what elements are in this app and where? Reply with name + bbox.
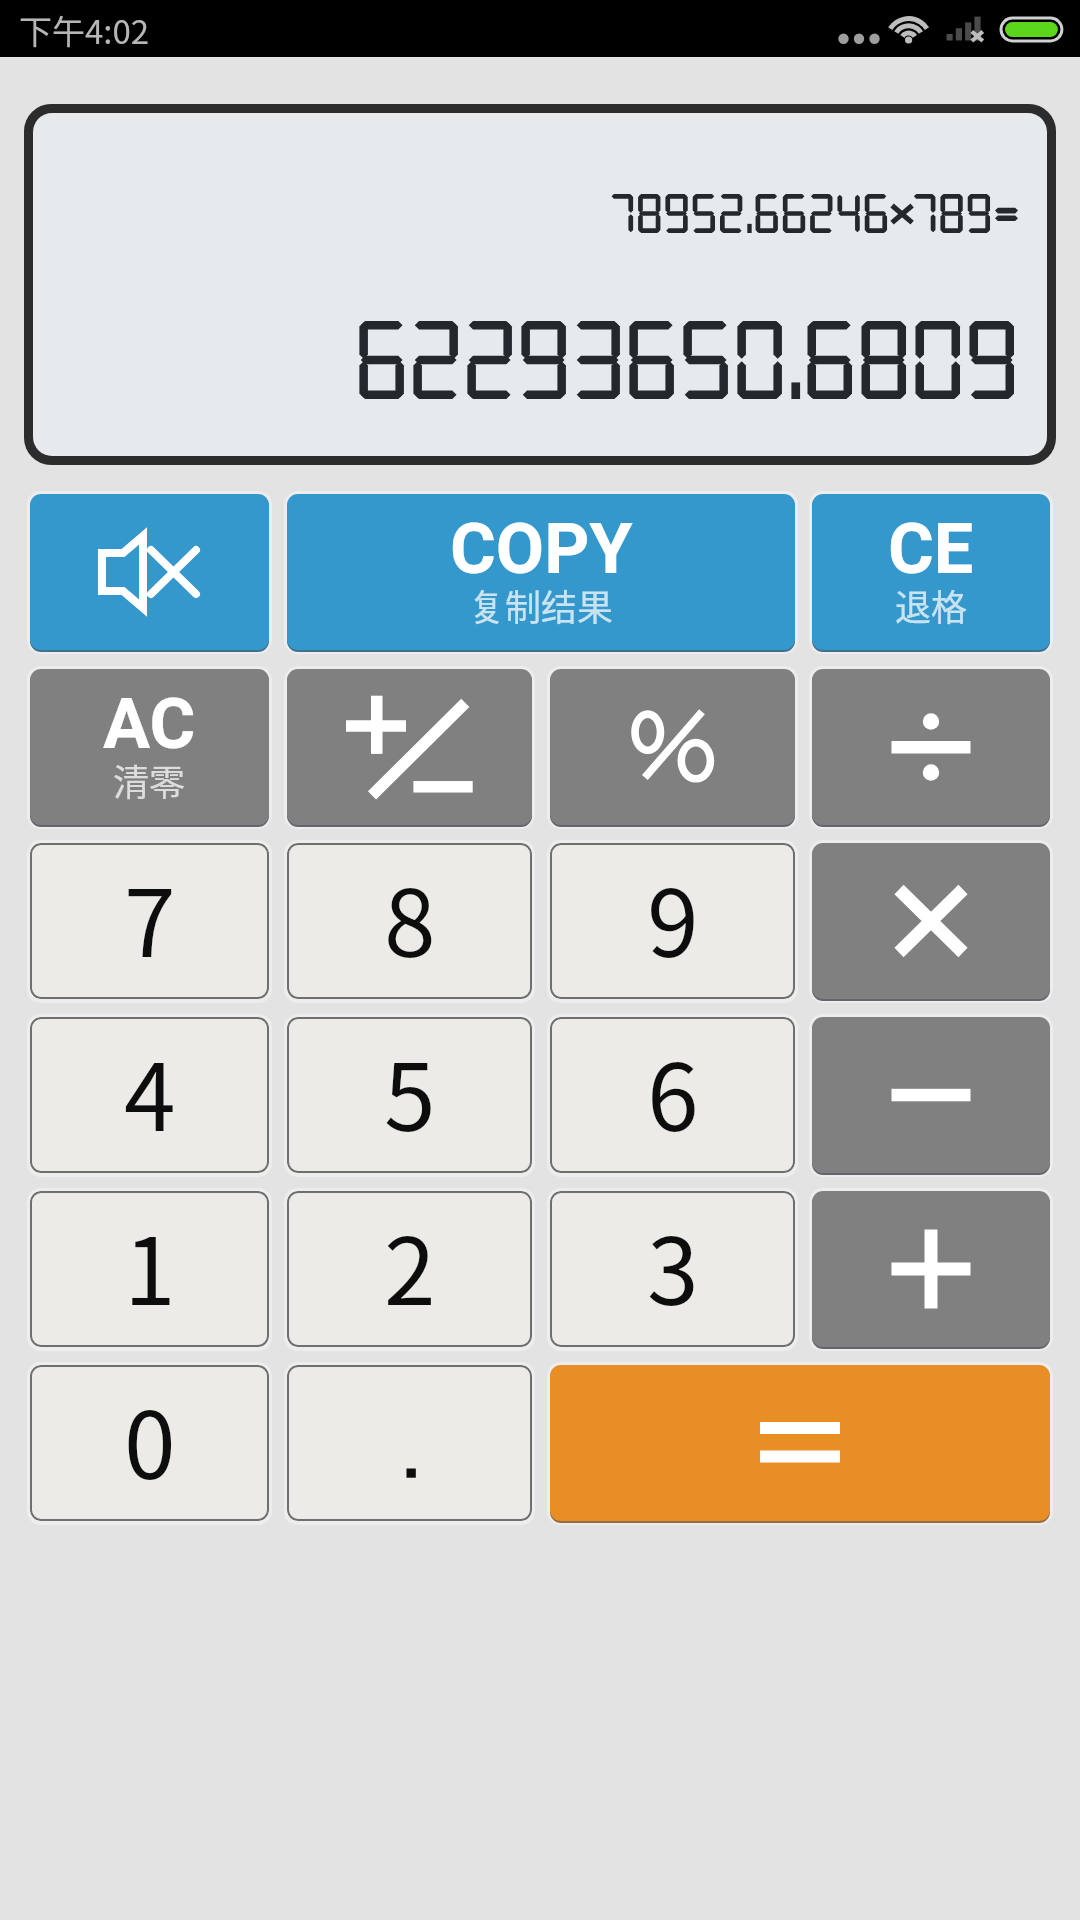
staticText: 5	[384, 1023, 436, 1158]
staticText: AC	[103, 683, 196, 765]
staticText: 4	[124, 1023, 176, 1158]
button[interactable]: Mute	[30, 494, 269, 650]
button[interactable]: COPY 复制结果	[287, 494, 795, 650]
button[interactable]: 0	[30, 1365, 269, 1521]
button[interactable]: 1	[30, 1191, 269, 1347]
button[interactable]: Minus	[812, 1017, 1050, 1173]
staticText: 3	[647, 1197, 699, 1332]
staticText: 2	[384, 1197, 436, 1332]
staticText: CE	[888, 508, 974, 590]
button[interactable]: 4	[30, 1017, 269, 1173]
staticText: 7	[124, 849, 176, 984]
button[interactable]: 7	[30, 843, 269, 999]
button[interactable]: Multiply	[812, 843, 1050, 999]
button[interactable]: CE 退格	[812, 494, 1050, 650]
button[interactable]: 8	[287, 843, 532, 999]
button[interactable]: Plus minus sign	[287, 669, 532, 825]
staticText: 下午4:02	[19, 6, 150, 54]
button[interactable]: Percent	[550, 669, 795, 825]
button[interactable]: 6	[550, 1017, 795, 1173]
staticText: 9	[647, 849, 699, 984]
button[interactable]: 2	[287, 1191, 532, 1347]
button[interactable]: 3	[550, 1191, 795, 1347]
button[interactable]: 5	[287, 1017, 532, 1173]
staticText: 复制结果	[469, 579, 614, 631]
staticText: 0	[124, 1371, 176, 1506]
button[interactable]: AC 清零	[30, 669, 269, 825]
staticText: 8	[384, 849, 436, 984]
button[interactable]: 9	[550, 843, 795, 999]
staticText: 6	[647, 1023, 699, 1158]
button[interactable]: Decimal point	[287, 1365, 532, 1521]
button[interactable]: Plus	[812, 1191, 1050, 1347]
button[interactable]: Equals	[550, 1365, 1050, 1521]
staticText: 1	[124, 1197, 176, 1332]
button[interactable]: Divide	[812, 669, 1050, 825]
staticText: COPY	[450, 508, 633, 590]
staticText: 清零	[113, 754, 186, 806]
staticText: 退格	[895, 579, 968, 631]
